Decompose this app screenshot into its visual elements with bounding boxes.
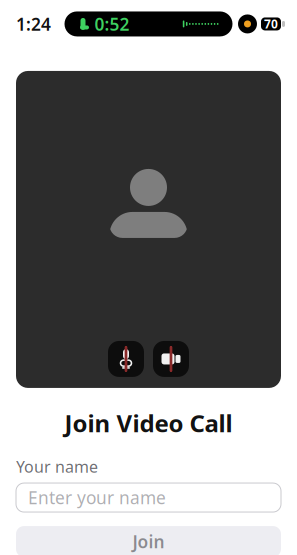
staticText: Join Video Call: [64, 407, 232, 439]
staticText: Join: [132, 530, 164, 553]
staticText: Enter your name: [28, 486, 166, 509]
staticText: 0:52: [94, 12, 129, 35]
staticText: Your name: [16, 456, 98, 477]
button[interactable]: Turn on camera: [153, 341, 189, 377]
staticText: 70: [264, 16, 278, 32]
button[interactable]: Your name: [16, 483, 281, 512]
button[interactable]: Unmute microphone: [108, 341, 144, 377]
staticText: 1:24: [16, 12, 51, 35]
button[interactable]: Join: [16, 526, 281, 555]
